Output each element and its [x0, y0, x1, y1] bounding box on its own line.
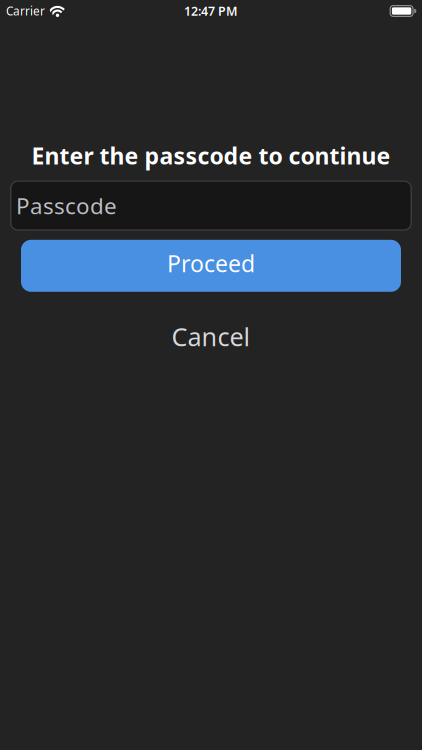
staticText: Enter the passcode to continue [31, 140, 390, 171]
staticText: Passcode [16, 190, 117, 221]
staticText: Cancel [171, 319, 250, 354]
staticText: Carrier [6, 3, 45, 19]
button[interactable]: Cancel [171, 319, 250, 354]
staticText: Proceed [167, 248, 255, 279]
button[interactable]: Proceed [21, 240, 401, 292]
staticText: 12:47 PM [184, 3, 238, 19]
